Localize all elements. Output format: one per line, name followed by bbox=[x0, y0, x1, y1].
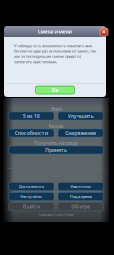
staticText: Улучшить bbox=[68, 112, 94, 120]
staticText: Этап bbox=[50, 105, 61, 113]
staticText: ✕ bbox=[101, 28, 107, 36]
button[interactable]: Способности bbox=[8, 129, 54, 137]
button[interactable]: Закрыть bbox=[100, 28, 108, 36]
staticText: Выйти bbox=[23, 203, 40, 210]
staticText: Смена имени bbox=[37, 28, 72, 35]
staticText: Участники bbox=[70, 184, 91, 189]
button[interactable]: Участники bbox=[58, 182, 103, 190]
staticText: Поддержка bbox=[70, 194, 92, 199]
button[interactable]: Достижения bbox=[8, 182, 54, 190]
staticText: Достижения bbox=[19, 184, 44, 189]
button[interactable]: Ок bbox=[35, 86, 74, 94]
button[interactable]: Об игре bbox=[58, 202, 103, 210]
button[interactable]: Принять bbox=[8, 146, 103, 154]
staticText: 5 из 10 bbox=[23, 112, 40, 120]
staticText: Казна bbox=[48, 122, 63, 130]
button[interactable]: 5 из 10 bbox=[8, 112, 54, 120]
staticText: Ок bbox=[51, 86, 58, 94]
staticText: Получить награду bbox=[33, 139, 78, 147]
staticText: Снаряжение bbox=[65, 129, 96, 137]
staticText: Способности bbox=[15, 129, 48, 137]
staticText: Об игре bbox=[71, 203, 90, 210]
staticText: Гильдия Союз Орла bbox=[38, 212, 73, 217]
staticText: Принять bbox=[45, 146, 67, 154]
staticText: У таблицы есть возможность поменять имя … bbox=[14, 43, 96, 64]
button[interactable]: Снаряжение bbox=[58, 129, 103, 137]
button[interactable]: Настройки bbox=[8, 192, 54, 200]
staticText: Настройки bbox=[20, 194, 42, 199]
button[interactable]: Улучшить bbox=[58, 112, 103, 120]
button[interactable]: Поддержка bbox=[58, 192, 103, 200]
button[interactable]: Выйти bbox=[8, 202, 54, 210]
